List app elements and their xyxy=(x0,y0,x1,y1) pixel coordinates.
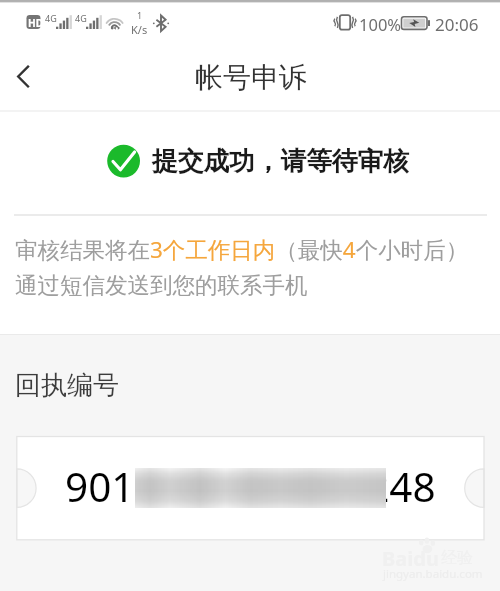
staticText: 4G xyxy=(75,12,87,24)
staticText: K/s xyxy=(131,22,148,37)
staticText: 提交成功，请等待审核 xyxy=(152,145,409,177)
staticText: 审核结果将在3个工作日内（最快4个小时后） 通过短信发送到您的联系手机 xyxy=(15,234,469,300)
staticText: 回执编号 xyxy=(15,369,119,402)
staticText: 1 xyxy=(137,9,143,21)
button[interactable]: 返回 xyxy=(2,54,46,98)
staticText: 100% xyxy=(359,13,402,35)
staticText: HD xyxy=(28,16,43,30)
staticText: 20:06 xyxy=(435,13,479,36)
staticText: 4G xyxy=(45,12,57,24)
button[interactable]: 复制回执编号 xyxy=(17,436,484,540)
staticText: 9012345678901248 xyxy=(65,459,436,514)
staticText: 帐号申诉 xyxy=(195,60,307,95)
